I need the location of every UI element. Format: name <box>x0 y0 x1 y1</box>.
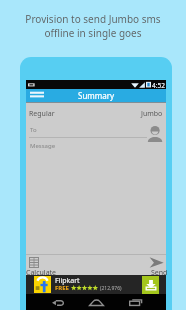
staticText: Summary <box>78 90 115 101</box>
staticText: Flipkart <box>55 276 80 286</box>
button[interactable]: Back <box>46 294 70 310</box>
staticText: Message <box>30 142 56 150</box>
staticText: FREE <box>55 284 69 292</box>
staticText: offline in single goes <box>44 26 142 40</box>
button[interactable]: Install <box>142 276 159 294</box>
staticText: Regular <box>29 109 55 119</box>
staticText: To <box>30 126 37 134</box>
staticText: (212,976) <box>100 285 122 292</box>
button[interactable]: Recent apps <box>123 294 147 310</box>
staticText: Jumbo <box>141 109 163 119</box>
staticText: 4:52 <box>152 81 165 90</box>
button[interactable]: Flipkart <box>26 275 166 294</box>
staticText: Provision to send Jumbo sms <box>25 12 161 26</box>
button[interactable]: Menu <box>28 89 47 102</box>
button[interactable]: Home <box>84 294 109 310</box>
button[interactable]: Send <box>144 257 166 279</box>
staticText: Calculate <box>26 268 57 278</box>
button[interactable]: Calculate <box>26 257 66 279</box>
staticText: Send <box>151 268 168 278</box>
button[interactable]: Pick contact <box>148 123 163 142</box>
